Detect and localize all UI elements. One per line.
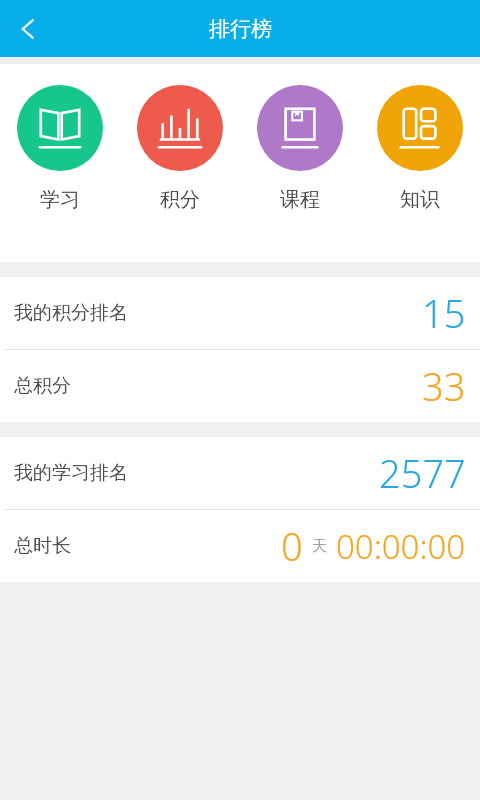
button[interactable]: 课程 <box>240 64 360 262</box>
staticText: 0 <box>281 520 303 572</box>
staticText: 课程 <box>280 187 320 212</box>
button[interactable]: 学习 <box>0 64 120 262</box>
staticText: 学习 <box>40 187 80 212</box>
staticText: 总时长 <box>14 534 71 558</box>
staticText: 33 <box>422 360 466 412</box>
staticText: 天 <box>312 537 327 556</box>
button[interactable]: 总积分 <box>0 350 480 422</box>
button[interactable]: 我的积分排名 <box>0 277 480 349</box>
staticText: 我的学习排名 <box>14 461 128 485</box>
staticText: 排行榜 <box>209 16 272 42</box>
staticText: 00:00:00 <box>336 524 466 569</box>
button[interactable]: 积分 <box>120 64 240 262</box>
staticText: 总积分 <box>14 374 71 398</box>
button[interactable]: 知识 <box>360 64 480 262</box>
button[interactable]: 总时长 <box>0 510 480 582</box>
staticText: 知识 <box>400 187 440 212</box>
staticText: 我的积分排名 <box>14 301 128 325</box>
staticText: 积分 <box>160 187 200 212</box>
staticText: 15 <box>422 287 466 339</box>
button[interactable]: 我的学习排名 <box>0 437 480 509</box>
button[interactable]: Back <box>0 1 56 57</box>
staticText: 2577 <box>379 447 466 499</box>
